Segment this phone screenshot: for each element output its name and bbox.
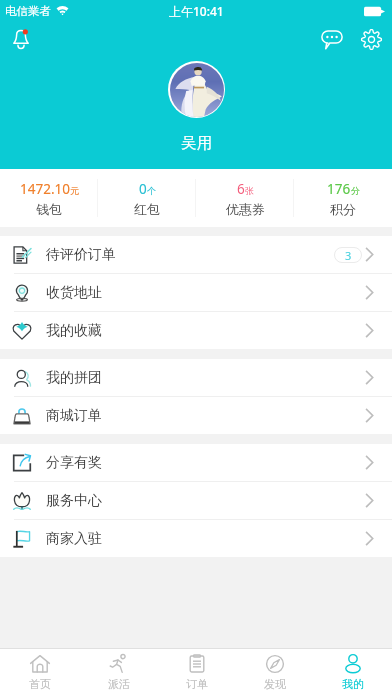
staticText: 积分 [330, 201, 356, 217]
button[interactable]: 176 [294, 169, 392, 227]
staticText: 收货地址 [46, 284, 102, 302]
button[interactable]: 我的 [314, 649, 392, 696]
staticText: 吴用 [181, 133, 212, 153]
staticText: 电信業者 [5, 4, 51, 18]
button[interactable]: 商家入驻 [0, 520, 392, 557]
button[interactable]: Messages [317, 24, 347, 54]
button[interactable]: 分享有奖 [0, 444, 392, 481]
staticText: 钱包 [36, 201, 62, 217]
staticText: 176 [327, 180, 351, 198]
button[interactable]: 我的拼团 [0, 359, 392, 396]
button[interactable]: Settings [356, 24, 386, 54]
staticText: 订单 [186, 677, 208, 691]
staticText: 派活 [108, 677, 130, 691]
button[interactable]: 派活 [79, 649, 158, 696]
staticText: 个 [147, 185, 156, 196]
button[interactable]: 商城订单 [0, 397, 392, 434]
staticText: 3 [345, 248, 352, 263]
button[interactable]: 我的收藏 [0, 312, 392, 349]
button[interactable]: 0 [98, 169, 196, 227]
button[interactable]: 首页 [0, 649, 79, 696]
staticText: 我的收藏 [46, 322, 102, 340]
staticText: 6 [237, 180, 245, 198]
staticText: 我的 [342, 677, 364, 691]
staticText: 上午10:41 [169, 3, 224, 19]
staticText: 服务中心 [46, 492, 102, 510]
staticText: 商城订单 [46, 407, 102, 425]
button[interactable] [168, 61, 225, 118]
button[interactable]: 待评价订单 [0, 236, 392, 273]
staticText: 待评价订单 [46, 246, 116, 264]
button[interactable]: 1472.10 [0, 169, 98, 227]
staticText: 分 [351, 185, 360, 196]
staticText: 商家入驻 [46, 530, 102, 548]
staticText: 我的拼团 [46, 369, 102, 387]
button[interactable]: 发现 [236, 649, 314, 696]
button[interactable]: 服务中心 [0, 482, 392, 519]
button[interactable]: Notifications [5, 27, 37, 59]
button[interactable]: 订单 [158, 649, 236, 696]
button[interactable]: 6 [196, 169, 294, 227]
staticText: 0 [139, 180, 147, 198]
button[interactable]: 收货地址 [0, 274, 392, 311]
staticText: 分享有奖 [46, 454, 102, 472]
staticText: 优惠券 [226, 201, 265, 217]
staticText: 红包 [134, 201, 160, 217]
staticText: 1472.10 [20, 180, 70, 198]
staticText: 张 [245, 185, 254, 196]
staticText: 首页 [29, 677, 51, 691]
staticText: 元 [70, 185, 79, 196]
staticText: 发现 [264, 677, 286, 691]
